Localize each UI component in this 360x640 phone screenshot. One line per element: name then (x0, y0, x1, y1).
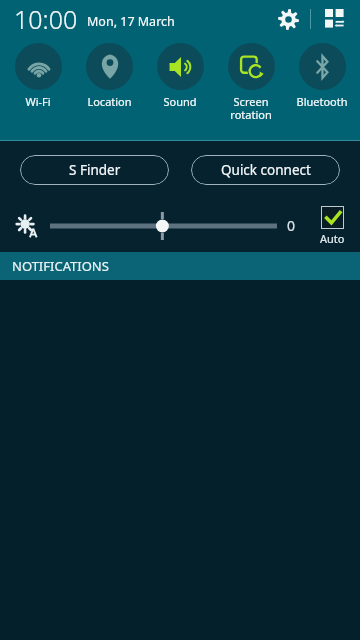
staticText: Wi-Fi (25, 94, 51, 109)
button[interactable]: Sound (147, 43, 213, 109)
button[interactable]: Edit quick settings (318, 2, 352, 36)
staticText: Location (87, 94, 132, 109)
button[interactable]: Location (76, 43, 142, 109)
staticText: Bluetooth (296, 94, 348, 109)
button[interactable] (50, 206, 277, 246)
staticText: 0 (287, 216, 296, 235)
staticText: Mon, 17 March (87, 13, 175, 30)
staticText: Sound (163, 94, 197, 109)
button[interactable]: Wi-Fi (5, 43, 71, 109)
button[interactable]: S Finder (20, 155, 169, 185)
button[interactable]: Quick connect (191, 155, 340, 185)
button[interactable]: Auto (310, 206, 354, 246)
button[interactable]: Bluetooth (289, 43, 355, 109)
button[interactable]: Auto brightness (10, 209, 44, 243)
staticText: Auto (320, 231, 345, 246)
staticText: 10:00 (14, 2, 78, 36)
staticText: NOTIFICATIONS (12, 257, 109, 275)
button[interactable]: Screen rotation (218, 43, 284, 122)
staticText: Screen rotation (230, 94, 272, 122)
staticText: Quick connect (221, 161, 311, 179)
staticText: S Finder (69, 161, 121, 179)
button[interactable]: NOTIFICATIONS (0, 252, 360, 280)
button[interactable]: Settings (271, 2, 305, 36)
